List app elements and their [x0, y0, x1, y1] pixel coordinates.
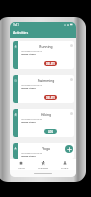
staticText: Logged 3 times [21, 121, 36, 124]
staticText: Last logged: 2024-06-12 [21, 50, 43, 53]
staticText: Profile [61, 166, 69, 169]
staticText: Yoga [18, 146, 74, 150]
staticText: DELETE [46, 96, 55, 99]
button[interactable]: More info [70, 44, 73, 47]
button[interactable]: Activities [32, 159, 54, 170]
staticText: DELETE [46, 62, 55, 65]
button[interactable]: More info [70, 78, 73, 81]
staticText: Last logged: 2024-05-29 [21, 152, 43, 155]
staticText: Activities [38, 166, 48, 169]
staticText: Activities [13, 30, 29, 35]
button[interactable]: DELETE [44, 61, 57, 66]
button[interactable]: Hiking [13, 109, 74, 137]
staticText: Swimming [18, 78, 74, 82]
staticText: Logged 4 times [21, 87, 36, 90]
staticText: Running [18, 44, 74, 48]
button[interactable]: Swimming [13, 75, 74, 103]
button[interactable]: LOG [44, 129, 57, 134]
staticText: Home [18, 166, 25, 169]
button[interactable]: Running [13, 41, 74, 69]
staticText: Logged 7 times [21, 53, 36, 56]
button[interactable]: Home [10, 159, 32, 170]
button[interactable]: Activities [10, 27, 76, 38]
button[interactable]: More info [70, 112, 73, 115]
staticText: LOG [48, 130, 54, 133]
staticText: Logged 9 times [21, 155, 36, 158]
button[interactable]: Add activity [65, 145, 73, 153]
button[interactable]: More info [70, 146, 73, 149]
staticText: 9:41 [13, 23, 19, 27]
button[interactable]: DELETE [44, 95, 57, 100]
staticText: Hiking [18, 112, 74, 116]
button[interactable]: Yoga [13, 143, 74, 159]
button[interactable]: Profile [54, 159, 76, 170]
staticText: Last logged: 2024-06-02 [21, 118, 43, 121]
staticText: Last logged: 2024-06-10 [21, 84, 43, 87]
